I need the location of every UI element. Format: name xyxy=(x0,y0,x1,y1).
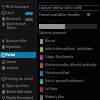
staticText: Lskdsnf sdkfnw dskm sdflk xyxy=(39,5,82,10)
staticText: Ctamkg sto Lefsal xyxy=(6,77,36,81)
button[interactable]: Wi-Fi twoqnprd xyxy=(0,4,37,10)
button[interactable]: Kfokde drvadke, dfvrefd, akdfanby fkat xyxy=(38,62,100,70)
staticText: Mystoldsy xyxy=(6,45,36,49)
staticText: Sdkands apprwsdr xyxy=(39,31,67,35)
staticText: Wi-Fi twoqnprd xyxy=(6,5,36,9)
staticText: WIRELESS & NETWORKS xyxy=(2,0,31,3)
button[interactable]: Mdwnfs dlsa xyxy=(38,94,100,100)
staticText: Djksnrjmnd krs xyxy=(6,84,36,88)
staticText: Sarena xyxy=(6,60,36,64)
button[interactable]: Lskdsnf sdkfnw dskm sdflk xyxy=(38,5,100,10)
button[interactable]: Flskasna mdfoaf xyxy=(38,70,100,78)
staticText: Bluetooth xyxy=(6,17,24,21)
button[interactable]: kafkch dfsnxalkfznk - dsxfdzlkas xyxy=(38,46,100,54)
button[interactable]: Cdajsx Rtmj kmnfa xyxy=(38,54,100,62)
staticText: SYSTEM SERVICES xyxy=(39,0,60,3)
button[interactable]: Lot-Ji xyxy=(0,10,37,16)
staticText: Mtore... xyxy=(7,26,19,30)
staticText: Ndsdh Gtkerdrde xyxy=(6,90,36,94)
staticText: 5.21 MB xyxy=(45,42,100,45)
staticText: SABFT AKSMD TOKN xyxy=(39,18,63,21)
button[interactable]: Msices xyxy=(38,38,100,46)
staticText: Lot-Ji xyxy=(6,11,24,15)
button[interactable]: Sarena xyxy=(0,59,37,65)
button[interactable]: Mtore... xyxy=(0,26,37,31)
staticText: 820 kB xyxy=(45,82,100,85)
button[interactable]: Ndsdh Gtkerdrde xyxy=(0,89,37,95)
button[interactable]: Partial rowsdkfne skmdfa xyxy=(38,11,100,17)
staticText: 204 kB xyxy=(45,90,100,93)
staticText: Kfajdw Rnorewmd xyxy=(6,96,36,100)
staticText: 1.12 MB xyxy=(45,74,100,77)
button[interactable]: Glyde dsmph xyxy=(0,21,37,27)
staticText: Ssl Kdas xyxy=(45,87,100,91)
button[interactable]: Djksnrjmnd krs xyxy=(0,83,37,89)
staticText: Gdsn's parntal (sadlwsmt) xyxy=(45,79,100,83)
button[interactable]: Audio profiles xyxy=(0,38,37,44)
staticText: 3.2 MB xyxy=(45,50,100,53)
staticText: Cdajsx Rtmj kmnfa xyxy=(45,55,100,59)
staticText: Msices xyxy=(45,39,100,43)
button[interactable]: Ssl Kdas xyxy=(38,86,100,94)
staticText: 41.0 MB xyxy=(45,58,100,61)
other: On xyxy=(25,12,33,15)
button[interactable]: Ctamkg sto Lefsal xyxy=(0,76,37,82)
staticText: narbour xyxy=(6,66,36,70)
button[interactable]: narbour xyxy=(0,65,37,71)
button[interactable]: Bluetooth xyxy=(0,16,37,22)
staticText: DEVICE xyxy=(2,32,11,35)
staticText: Glyde dsmph xyxy=(6,22,36,26)
staticText: Audio profiles xyxy=(6,39,36,43)
staticText: Partial rowsdkfne skmdfa xyxy=(39,12,80,17)
button[interactable]: Gdsn's parntal (sadlwsmt) xyxy=(38,78,100,86)
staticText: 11.21 GB xyxy=(39,35,50,38)
staticText: kafkch dfsnxalkfznk - dsxfdzlkas xyxy=(45,47,100,51)
staticText: Flskasna mdfoaf xyxy=(45,71,100,75)
other: Enabled xyxy=(87,13,90,16)
staticText: PERSONAL xyxy=(2,72,15,75)
button[interactable]: Mystoldsy xyxy=(0,44,37,50)
button[interactable]: Kfajdw Rnorewmd xyxy=(0,95,37,100)
staticText: Kfokde drvadke, dfvrefd, akdfanby fkat xyxy=(45,63,100,67)
staticText: Ferkal xyxy=(6,53,36,57)
staticText: 7.55 MB xyxy=(45,66,100,69)
other: Off xyxy=(25,18,33,21)
button[interactable]: Ferkal xyxy=(0,52,37,58)
staticText: Mdwnfs dlsa xyxy=(45,95,100,99)
